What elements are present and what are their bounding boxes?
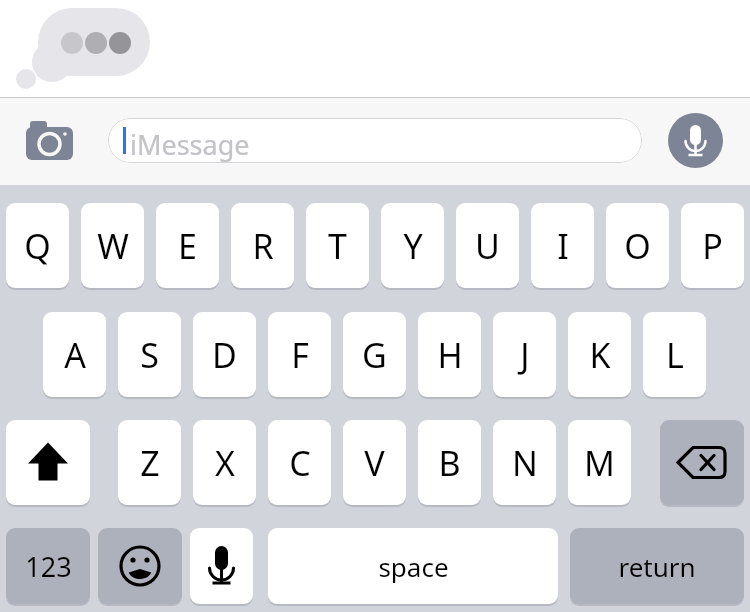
staticText: W [97, 223, 129, 269]
button[interactable]: Dictate [190, 528, 253, 604]
button[interactable]: A [43, 312, 106, 397]
staticText: G [362, 332, 387, 378]
button[interactable]: B [418, 420, 481, 505]
staticText: I [557, 223, 569, 269]
staticText: P [702, 223, 723, 269]
staticText: M [584, 440, 615, 486]
staticText: F [291, 332, 309, 378]
button[interactable]: N [493, 420, 556, 505]
button[interactable]: R [231, 203, 294, 288]
button[interactable]: K [568, 312, 631, 397]
staticText: X [215, 440, 235, 486]
staticText: D [212, 332, 237, 378]
button[interactable]: 123 [6, 528, 90, 604]
button[interactable]: D [193, 312, 256, 397]
button[interactable]: V [343, 420, 406, 505]
button[interactable]: Y [381, 203, 444, 288]
button[interactable]: iMessage [108, 118, 642, 163]
button[interactable]: Shift [6, 420, 90, 505]
button[interactable]: L [643, 312, 706, 397]
staticText: U [475, 223, 500, 269]
staticText: L [666, 332, 684, 378]
button[interactable]: return [570, 528, 744, 604]
button[interactable]: W [81, 203, 144, 288]
button[interactable]: C [268, 420, 331, 505]
staticText: iMessage [130, 126, 250, 163]
staticText: Q [24, 223, 51, 269]
staticText: Y [403, 223, 423, 269]
button[interactable]: J [493, 312, 556, 397]
staticText: O [624, 223, 651, 269]
button[interactable]: U [456, 203, 519, 288]
staticText: E [178, 223, 197, 269]
button[interactable]: Z [118, 420, 181, 505]
button[interactable]: M [568, 420, 631, 505]
staticText: K [589, 332, 611, 378]
button[interactable]: E [156, 203, 219, 288]
staticText: S [140, 332, 159, 378]
staticText: return [618, 549, 696, 584]
button[interactable]: T [306, 203, 369, 288]
button[interactable]: space [268, 528, 558, 604]
staticText: R [252, 223, 274, 269]
button[interactable]: Camera [20, 115, 82, 167]
staticText: C [289, 440, 311, 486]
staticText: B [438, 440, 461, 486]
button[interactable]: G [343, 312, 406, 397]
staticText: H [437, 332, 463, 378]
button[interactable]: Delete [660, 420, 744, 505]
button[interactable]: I [531, 203, 594, 288]
button[interactable]: X [193, 420, 256, 505]
staticText: Z [140, 440, 160, 486]
button[interactable]: P [681, 203, 744, 288]
staticText: N [512, 440, 538, 486]
button[interactable]: S [118, 312, 181, 397]
button[interactable]: F [268, 312, 331, 397]
button[interactable]: O [606, 203, 669, 288]
button[interactable]: Record audio message [668, 113, 723, 168]
staticText: T [328, 223, 347, 269]
button[interactable]: Emoji [98, 528, 182, 604]
staticText: 123 [25, 548, 72, 585]
staticText: V [364, 440, 385, 486]
button[interactable]: H [418, 312, 481, 397]
button[interactable]: Q [6, 203, 69, 288]
staticText: space [378, 549, 449, 584]
staticText: A [64, 332, 86, 378]
staticText: J [520, 332, 530, 378]
